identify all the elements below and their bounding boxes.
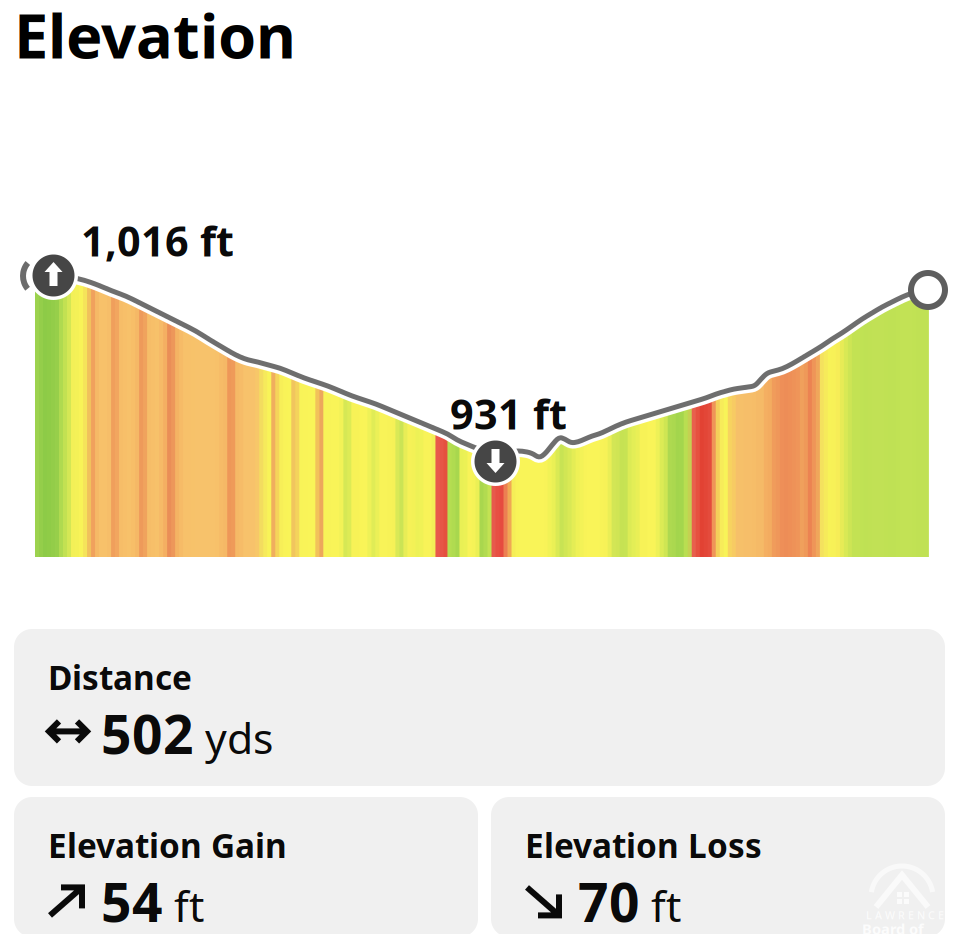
staticText: 70 ft <box>578 866 681 934</box>
button[interactable]: High point, 1,016 feet <box>29 251 78 300</box>
button[interactable]: Low point, 931 feet <box>471 437 520 486</box>
staticText: Elevation Loss <box>525 823 762 867</box>
button[interactable]: Elevation Loss <box>491 797 945 934</box>
staticText: Elevation Gain <box>48 823 287 867</box>
staticText: Elevation <box>14 0 296 75</box>
button[interactable]: Route end <box>911 273 945 307</box>
staticText: 54 ft <box>101 866 204 934</box>
button[interactable]: Distance <box>14 629 945 786</box>
staticText: 931 ft <box>450 386 567 441</box>
staticText: 502 yds <box>101 698 273 769</box>
staticText: 1,016 ft <box>81 213 234 268</box>
staticText: Distance <box>48 655 192 699</box>
button[interactable]: Elevation Gain <box>14 797 478 934</box>
staticText: L A W R E N C E <box>866 908 944 922</box>
staticText: Board of REALTORS <box>862 919 936 934</box>
